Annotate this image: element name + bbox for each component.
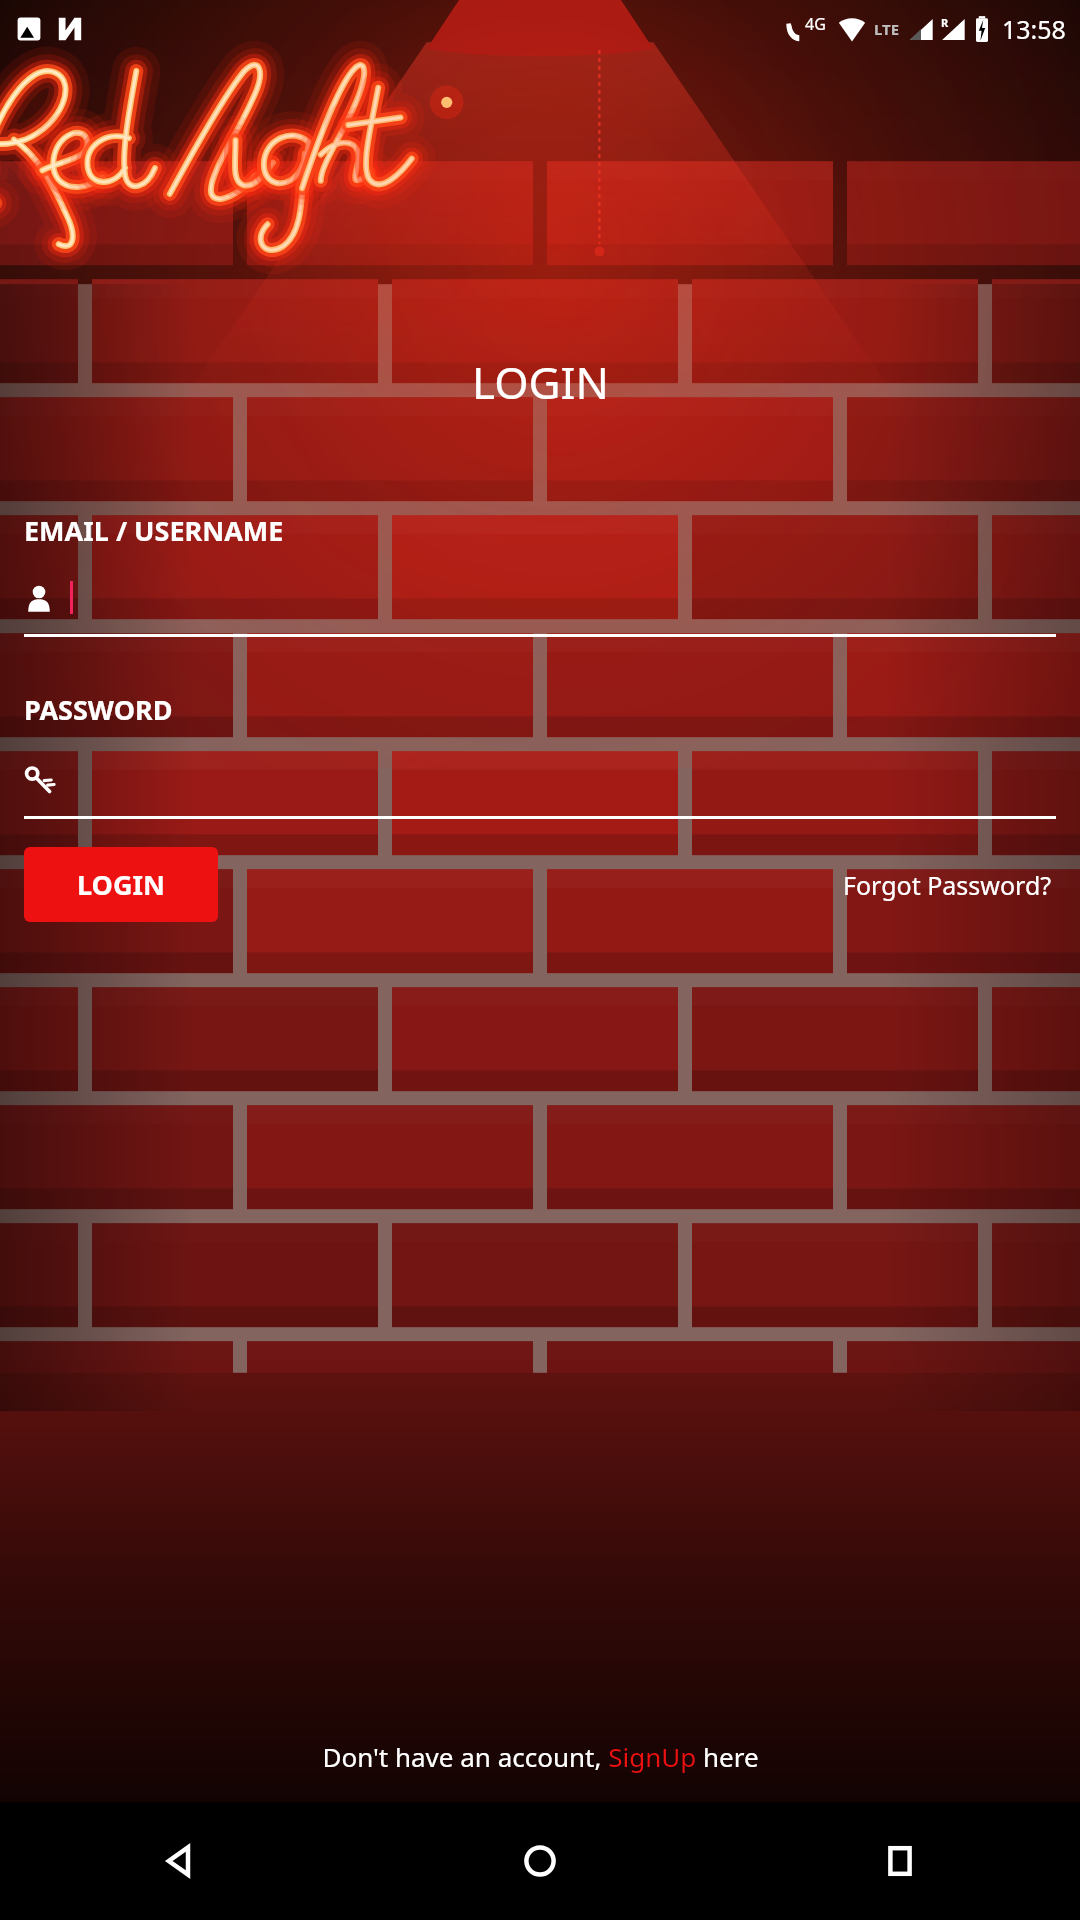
button[interactable]: Back (0, 1802, 360, 1920)
staticText: LOGIN (77, 866, 165, 903)
button[interactable]: Forgot Password? (839, 858, 1056, 912)
staticText: Forgot Password? (843, 868, 1052, 902)
staticText: Don't have an account, SignUp here (322, 1739, 759, 1774)
button[interactable]: LOGIN (24, 847, 218, 922)
button[interactable]: Home (360, 1802, 720, 1920)
staticText: 4G (805, 13, 826, 35)
button[interactable] (24, 764, 1056, 796)
staticText: LOGIN (472, 352, 609, 412)
button[interactable] (24, 581, 1056, 614)
button[interactable]: Recent apps (720, 1802, 1080, 1920)
button[interactable]: Don't have an account, SignUp here (24, 1729, 1056, 1784)
staticText: R (941, 15, 949, 30)
staticText: PASSWORD (24, 691, 173, 728)
staticText: LTE (874, 19, 900, 39)
staticText: 13:58 (1002, 12, 1066, 46)
staticText: EMAIL / USERNAME (24, 512, 284, 549)
